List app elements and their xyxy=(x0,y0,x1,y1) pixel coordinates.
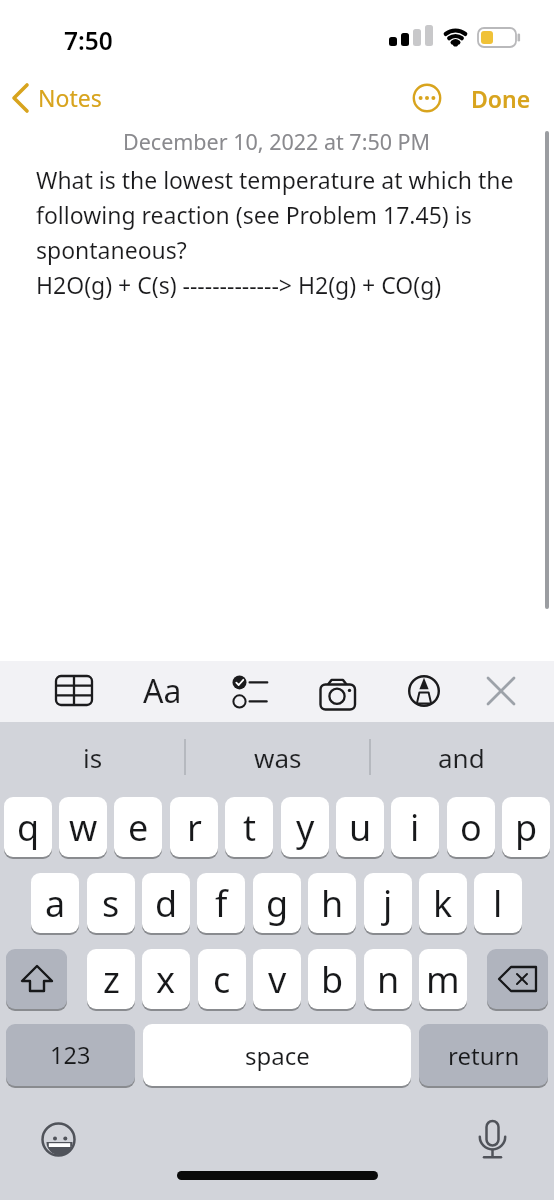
staticText: 7:50 xyxy=(64,24,113,57)
button[interactable]: b xyxy=(308,949,356,1009)
button[interactable] xyxy=(38,1119,79,1160)
button[interactable] xyxy=(6,949,67,1009)
staticText: following reaction (see Problem 17.45) i… xyxy=(36,199,472,230)
staticText: l xyxy=(493,879,503,928)
staticText: and xyxy=(438,740,485,775)
button[interactable]: and xyxy=(369,729,554,785)
staticText: z xyxy=(103,955,120,1004)
button[interactable]: o xyxy=(447,797,495,857)
staticText: b xyxy=(321,955,344,1004)
staticText: Notes xyxy=(38,82,102,113)
staticText: h xyxy=(321,879,344,928)
button[interactable]: Done xyxy=(462,82,540,114)
button[interactable]: v xyxy=(253,949,301,1009)
button[interactable]: w xyxy=(59,797,107,857)
staticText: m xyxy=(426,955,460,1004)
staticText: c xyxy=(213,955,231,1004)
button[interactable]: l xyxy=(474,873,522,933)
staticText: x xyxy=(156,955,176,1004)
button[interactable]: Notes xyxy=(8,80,118,116)
staticText: n xyxy=(377,955,400,1004)
button[interactable] xyxy=(50,672,100,712)
button[interactable]: y xyxy=(281,797,329,857)
staticText: v xyxy=(268,955,287,1004)
staticText: t xyxy=(243,803,256,852)
button[interactable]: m xyxy=(419,949,467,1009)
button[interactable]: u xyxy=(336,797,384,857)
button[interactable]: return xyxy=(419,1024,548,1086)
button[interactable] xyxy=(314,669,362,713)
button[interactable]: k xyxy=(419,873,467,933)
staticText: was xyxy=(254,740,302,775)
button[interactable]: f xyxy=(197,873,245,933)
button[interactable]: s xyxy=(87,873,135,933)
staticText: d xyxy=(155,879,178,928)
button[interactable]: 123 xyxy=(6,1024,135,1086)
button[interactable]: h xyxy=(308,873,356,933)
button[interactable]: space xyxy=(143,1024,411,1086)
staticText: 123 xyxy=(50,1039,91,1071)
button[interactable] xyxy=(410,82,444,116)
staticText: e xyxy=(128,803,149,852)
staticText: is xyxy=(83,740,103,775)
button[interactable]: z xyxy=(87,949,135,1009)
staticText: i xyxy=(410,803,420,852)
button[interactable]: was xyxy=(185,729,370,785)
staticText: u xyxy=(349,803,372,852)
button[interactable]: g xyxy=(253,873,301,933)
staticText: w xyxy=(69,803,98,852)
staticText: q xyxy=(17,803,40,852)
staticText: Done xyxy=(471,83,531,114)
button[interactable]: c xyxy=(198,949,246,1009)
staticText: f xyxy=(215,879,228,928)
button[interactable] xyxy=(487,949,548,1009)
staticText: o xyxy=(460,803,482,852)
staticText: spontaneous? xyxy=(36,234,187,265)
button[interactable]: d xyxy=(142,873,190,933)
button[interactable]: r xyxy=(170,797,218,857)
button[interactable] xyxy=(477,1115,509,1165)
staticText: Aa xyxy=(143,669,182,713)
staticText: p xyxy=(515,803,538,852)
button[interactable]: x xyxy=(142,949,190,1009)
staticText: return xyxy=(448,1039,520,1072)
button[interactable]: q xyxy=(4,797,52,857)
button[interactable]: Aa xyxy=(134,667,190,715)
button[interactable]: is xyxy=(0,729,185,785)
staticText: December 10, 2022 at 7:50 PM xyxy=(123,127,431,156)
staticText: space xyxy=(245,1039,310,1072)
button[interactable]: i xyxy=(391,797,439,857)
button[interactable]: t xyxy=(225,797,273,857)
staticText: y xyxy=(296,803,315,852)
staticText: g xyxy=(266,879,289,928)
button[interactable] xyxy=(226,669,278,713)
button[interactable] xyxy=(402,669,446,713)
button[interactable]: p xyxy=(502,797,550,857)
button[interactable]: n xyxy=(364,949,412,1009)
staticText: k xyxy=(433,879,453,928)
staticText: What is the lowest temperature at which … xyxy=(36,164,514,195)
button[interactable]: a xyxy=(31,873,79,933)
button[interactable]: j xyxy=(364,873,412,933)
staticText: H2O(g) + C(s) -------------> H2(g) + CO(… xyxy=(36,269,442,300)
staticText: j xyxy=(383,879,393,928)
staticText: a xyxy=(45,879,66,928)
button[interactable] xyxy=(480,671,522,711)
staticText: s xyxy=(102,879,120,928)
button[interactable]: e xyxy=(114,797,162,857)
staticText: r xyxy=(187,803,202,852)
